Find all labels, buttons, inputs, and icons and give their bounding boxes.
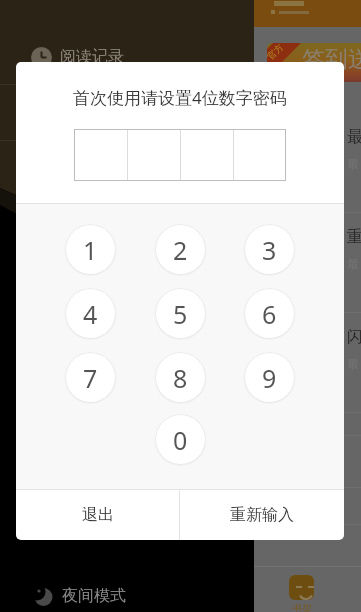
- button[interactable]: 最: [254, 113, 361, 213]
- staticText: 3: [262, 233, 277, 267]
- button[interactable]: 7: [65, 352, 116, 403]
- button[interactable]: 4: [65, 288, 116, 339]
- staticText: 重: [347, 227, 361, 247]
- staticText: 退出: [82, 505, 114, 525]
- staticText: 夜间模式: [62, 586, 126, 606]
- staticText: 签到送: [302, 45, 361, 74]
- staticText: 7: [83, 361, 98, 395]
- button[interactable]: 9: [244, 352, 295, 403]
- staticText: 5: [173, 297, 188, 331]
- staticText: 0: [173, 423, 188, 457]
- button[interactable]: 0: [155, 414, 206, 465]
- button[interactable]: 退出: [16, 490, 179, 540]
- button[interactable]: 8: [155, 352, 206, 403]
- button[interactable]: 重新输入: [180, 490, 344, 540]
- staticText: 官方: [267, 43, 285, 62]
- button[interactable]: 阅读记录: [0, 44, 254, 70]
- staticText: 6: [262, 297, 277, 331]
- button[interactable]: 闪: [254, 313, 361, 413]
- staticText: 书架: [292, 602, 312, 612]
- staticText: 最: [347, 156, 359, 171]
- staticText: 1: [83, 233, 98, 267]
- staticText: 最: [347, 356, 359, 371]
- button[interactable]: 重: [254, 213, 361, 313]
- button[interactable]: 6: [244, 288, 295, 339]
- staticText: 8: [173, 361, 188, 395]
- button[interactable]: 1: [65, 224, 116, 275]
- staticText: 4: [83, 297, 98, 331]
- staticText: 最: [347, 127, 361, 147]
- button[interactable]: 2: [155, 224, 206, 275]
- button[interactable]: 夜间模式: [0, 581, 254, 611]
- staticText: 最: [347, 256, 359, 271]
- staticText: 9: [262, 361, 277, 395]
- staticText: 首次使用请设置4位数字密码: [73, 86, 287, 109]
- button[interactable]: 3: [244, 224, 295, 275]
- staticText: 重新输入: [230, 505, 294, 525]
- staticText: 阅读记录: [60, 47, 124, 67]
- button[interactable]: 5: [155, 288, 206, 339]
- staticText: 闪: [347, 327, 361, 347]
- staticText: 2: [173, 233, 188, 267]
- button[interactable]: 书架: [254, 575, 349, 612]
